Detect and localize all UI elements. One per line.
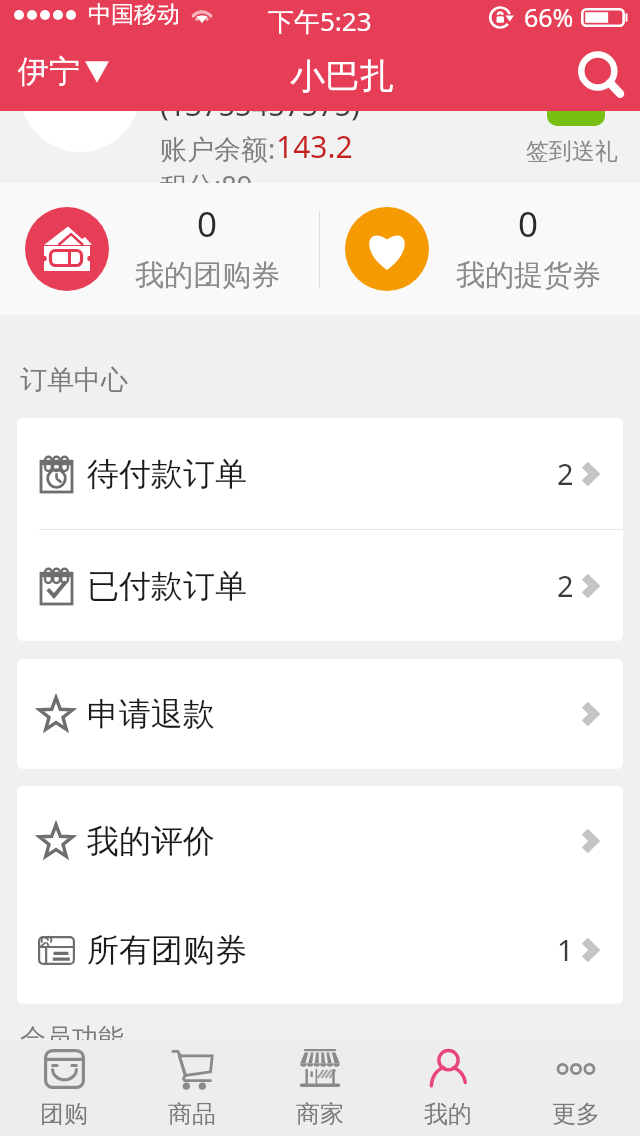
staticText: 中国移动 [88,0,180,29]
staticText: 更多 [552,1099,600,1129]
button[interactable]: 已付款订单 [17,530,623,641]
staticText: 订单中心 [20,363,128,397]
staticText: 66% [524,0,574,34]
staticText: 会员功能 [20,1022,124,1055]
button[interactable]: 待付款订单 [17,418,623,529]
staticText: 积分:89 [160,167,253,183]
staticText: 所有团购券 [87,930,247,970]
button[interactable]: 伊宁 [0,44,119,99]
staticText: 待付款订单 [87,454,247,494]
staticText: 商品 [168,1099,216,1129]
staticText: 我的评价 [87,821,215,861]
button[interactable]: 我的评价 [17,786,623,895]
staticText: 商家 [296,1099,344,1129]
staticText: 伊宁 [18,52,80,91]
button[interactable]: 所有团购券 [17,895,623,1004]
button[interactable]: 更多 [512,1040,640,1136]
button[interactable]: 0 [320,183,640,315]
button[interactable]: 申请退款 [17,659,623,769]
staticText: 已付款订单 [87,566,247,606]
button[interactable]: Check in [547,92,605,126]
staticText: 账户余额: [160,130,276,167]
staticText: 签到送礼 [526,137,618,166]
button[interactable]: 商家 [256,1040,384,1136]
staticText: 0 [197,200,218,248]
staticText: 下午5:23 [268,3,372,39]
staticText: 1 [557,930,574,969]
button[interactable]: Search [572,46,632,106]
staticText: 143.2 [276,126,353,167]
staticText: 我的 [424,1099,472,1129]
staticText: 0 [518,200,539,248]
button[interactable]: 商品 [128,1040,256,1136]
button[interactable]: 0 [0,183,319,315]
staticText: 我的提货券 [456,257,601,294]
staticText: 团购 [40,1099,88,1129]
button[interactable]: 我的 [384,1040,512,1136]
staticText: 2 [557,454,574,493]
button[interactable]: 团购 [0,1040,128,1136]
staticText: (13755457575) [160,85,360,124]
staticText: 我的团购券 [135,257,280,294]
staticText: 2 [557,566,574,605]
staticText: 小巴扎 [290,54,395,98]
staticText: 申请退款 [87,694,215,734]
